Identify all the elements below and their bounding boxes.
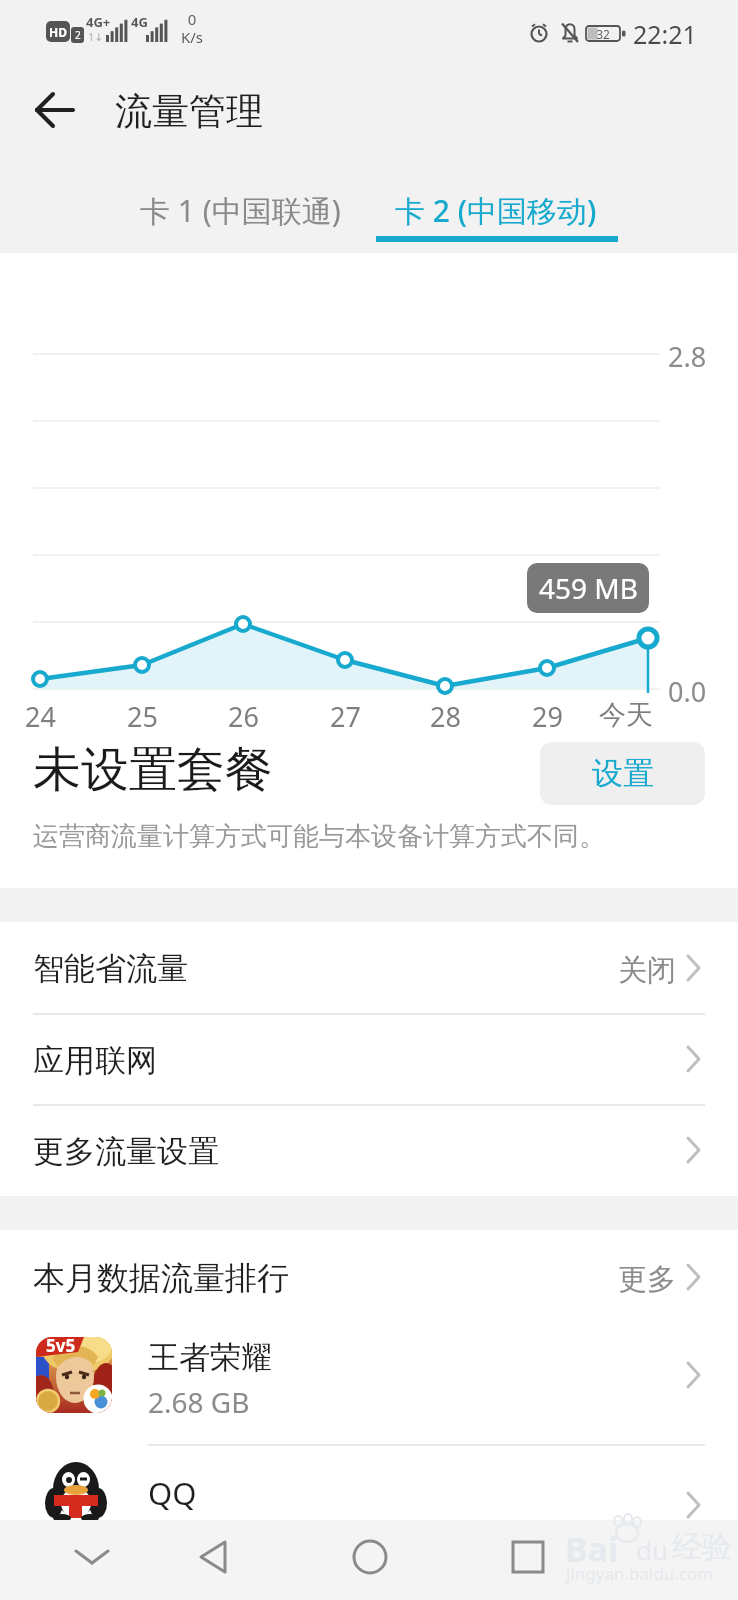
staticText: 更多流量设置 [33, 1132, 219, 1171]
staticText: 4G+ [86, 13, 111, 31]
staticText: 2.8 [668, 338, 728, 375]
staticText: 4G [131, 13, 148, 31]
staticText: QQ [148, 1472, 197, 1514]
staticText: 27 [330, 698, 361, 735]
button[interactable] [493, 1525, 563, 1589]
button[interactable]: 应用联网 [0, 1014, 738, 1105]
staticText: 本月数据流量排行 [33, 1258, 289, 1298]
button[interactable] [20, 80, 90, 140]
button[interactable] [177, 1525, 247, 1589]
staticText: 459 MB [539, 569, 638, 607]
staticText: 26 [228, 698, 259, 735]
button[interactable] [57, 1525, 127, 1589]
staticText: 0.0 [668, 673, 728, 710]
button[interactable]: 设置 [540, 742, 705, 805]
staticText: 运营商流量计算方式可能与本设备计算方式不同。 [33, 820, 605, 853]
button[interactable]: 智能省流量 [0, 922, 738, 1014]
staticText: 0 [172, 9, 212, 29]
button[interactable] [335, 1525, 405, 1589]
staticText: 流量管理 [115, 88, 263, 135]
button[interactable] [0, 1325, 738, 1445]
staticText: Bai [565, 1526, 619, 1572]
staticText: 设置 [592, 754, 654, 793]
staticText: 卡 2 (中国移动) [395, 190, 597, 231]
staticText: 更多 [618, 1261, 676, 1298]
button[interactable]: 更多流量设置 [0, 1105, 738, 1196]
staticText: HD [49, 24, 67, 40]
staticText: 未设置套餐 [33, 740, 273, 800]
staticText: 2.68 GB [148, 1383, 250, 1421]
button[interactable]: 本月数据流量排行 [0, 1230, 738, 1325]
staticText: 2 [75, 28, 81, 42]
button[interactable] [0, 1446, 738, 1520]
staticText: 24 [25, 698, 56, 735]
staticText: 今天 [599, 698, 653, 732]
staticText: 卡 1 (中国联通) [140, 190, 341, 231]
staticText: 智能省流量 [33, 949, 188, 988]
button[interactable]: 卡 2 (中国移动) [370, 178, 622, 242]
staticText: 29 [532, 698, 563, 735]
staticText: K/s [172, 27, 212, 47]
staticText: 王者荣耀 [148, 1338, 272, 1377]
staticText: du [636, 1532, 669, 1567]
staticText: jingyan.baidu.com [566, 1562, 714, 1585]
staticText: 25 [127, 698, 158, 735]
staticText: 22:21 [633, 17, 697, 51]
staticText: 经验 [672, 1528, 732, 1566]
staticText: 28 [430, 698, 461, 735]
staticText: 1↓ [88, 29, 104, 44]
staticText: 关闭 [618, 952, 676, 989]
staticText: 5v5 [46, 1334, 76, 1357]
staticText: 应用联网 [33, 1041, 157, 1080]
button[interactable]: 卡 1 (中国联通) [115, 178, 365, 242]
staticText: 32 [588, 26, 618, 42]
